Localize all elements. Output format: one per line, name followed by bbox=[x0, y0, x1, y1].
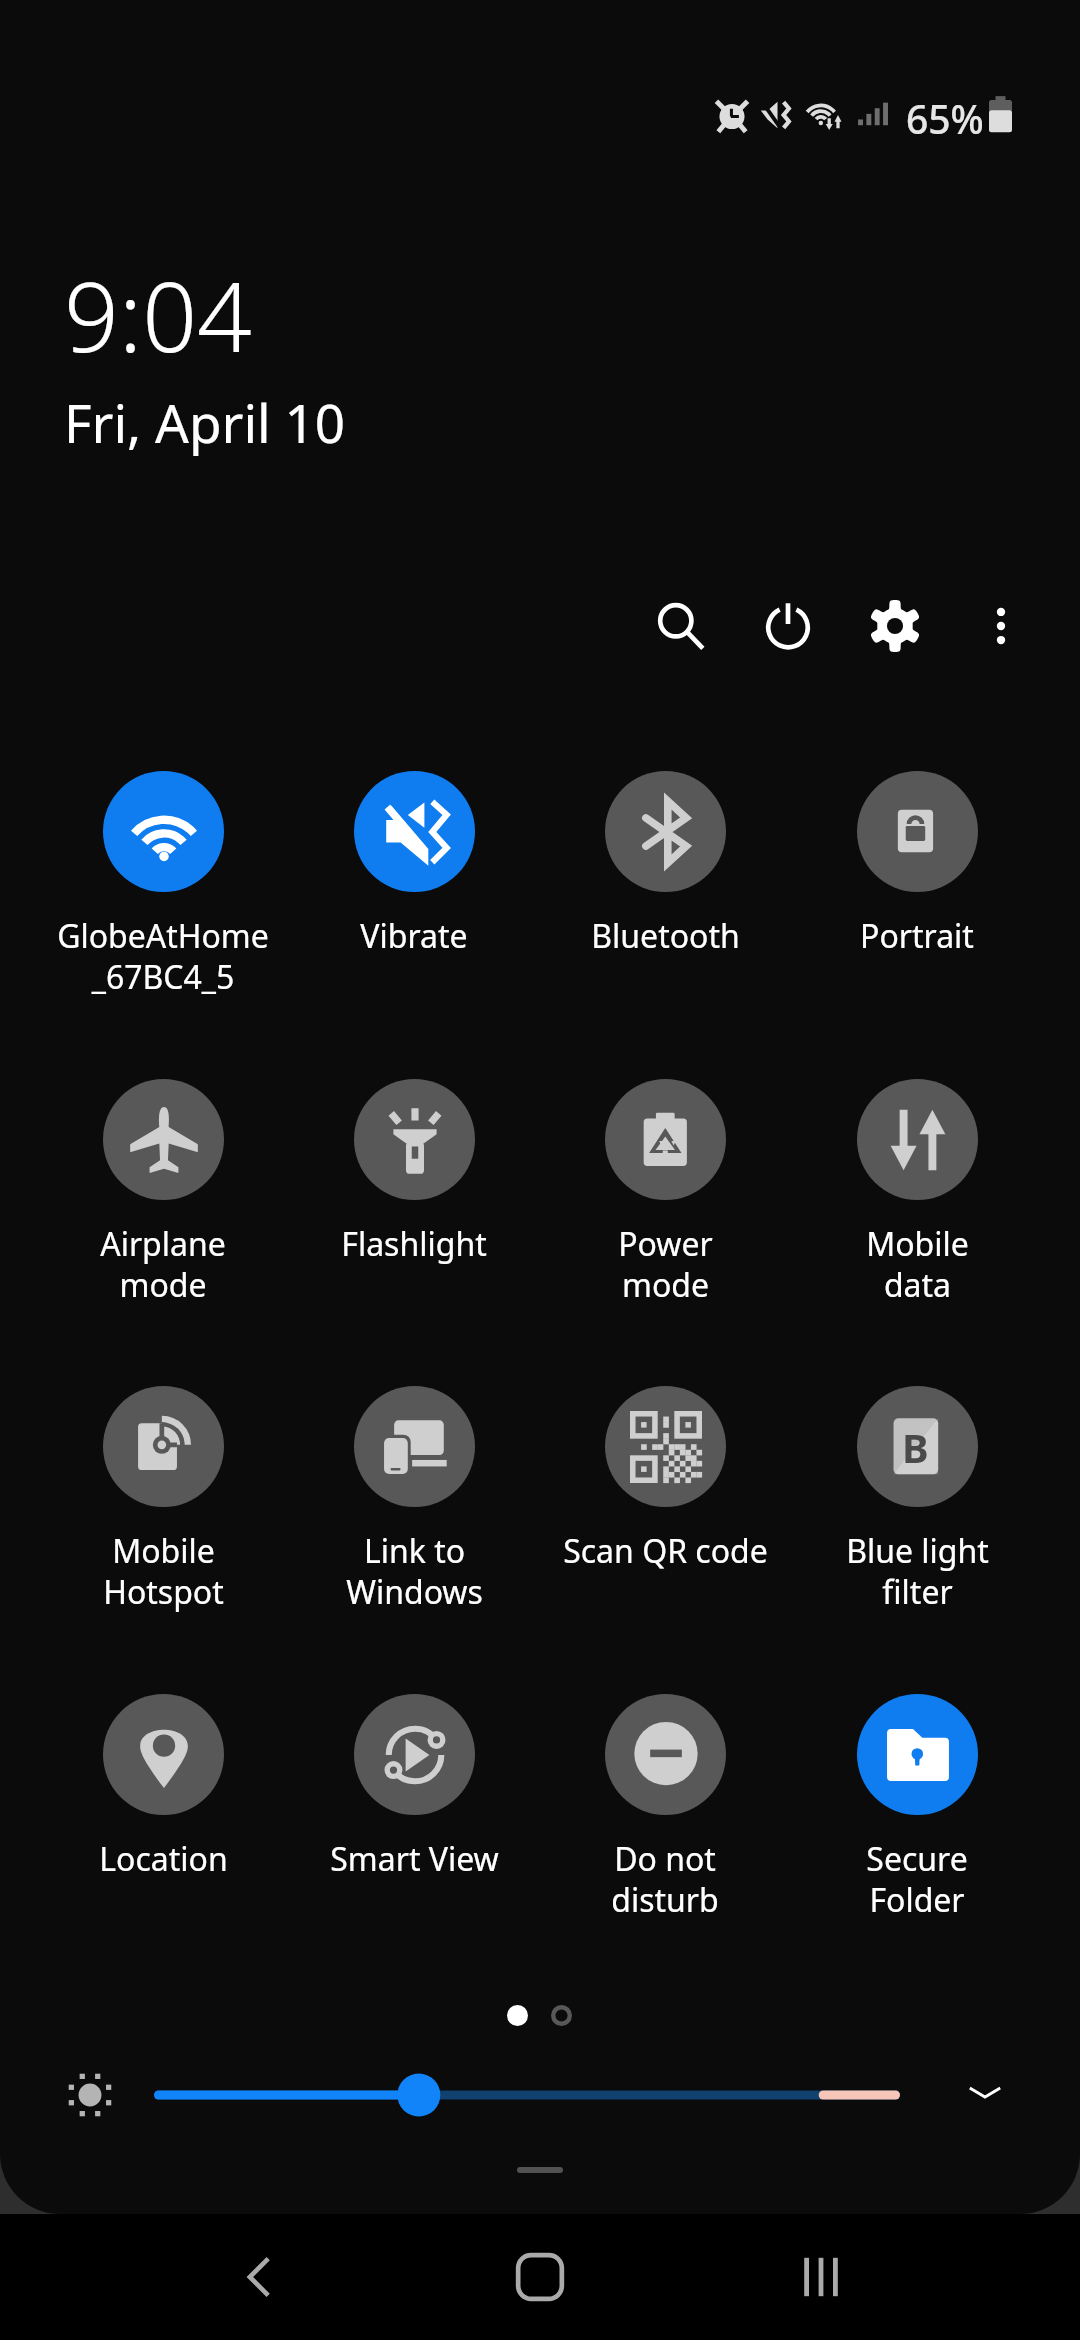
button[interactable]: Airplane mode bbox=[38, 1079, 288, 1307]
staticText: Blue light filter bbox=[846, 1529, 989, 1614]
button[interactable]: Portrait bbox=[792, 771, 1042, 958]
staticText: Mobile Hotspot bbox=[103, 1529, 224, 1614]
button[interactable]: Power bbox=[740, 578, 836, 674]
staticText: Do not disturb bbox=[611, 1837, 719, 1922]
button[interactable]: Scan QR code bbox=[540, 1386, 790, 1573]
button[interactable]: Do not disturb bbox=[540, 1694, 790, 1922]
button[interactable]: Flashlight bbox=[289, 1079, 539, 1266]
button[interactable]: Back bbox=[199, 2217, 319, 2337]
staticText: Scan QR code bbox=[563, 1529, 768, 1573]
staticText: GlobeAtHome _67BC4_5 bbox=[57, 914, 269, 999]
button[interactable]: Location bbox=[38, 1694, 288, 1881]
staticText: Vibrate bbox=[360, 914, 468, 958]
button[interactable]: Vibrate bbox=[289, 771, 539, 958]
button[interactable]: Power mode bbox=[540, 1079, 790, 1307]
staticText: Portrait bbox=[860, 914, 974, 958]
staticText: Power mode bbox=[618, 1222, 713, 1307]
staticText: Flashlight bbox=[341, 1222, 487, 1266]
staticText: B bbox=[902, 1420, 929, 1474]
button[interactable]: Mobile Hotspot bbox=[38, 1386, 288, 1614]
button[interactable]: Secure Folder bbox=[792, 1694, 1042, 1922]
button[interactable]: Mobile data bbox=[792, 1079, 1042, 1307]
button[interactable]: More options bbox=[953, 578, 1049, 674]
staticText: Location bbox=[99, 1837, 228, 1881]
staticText: Smart View bbox=[330, 1837, 499, 1881]
button[interactable]: GlobeAtHome _67BC4_5 bbox=[38, 771, 288, 999]
staticText: Fri, April 10 bbox=[64, 386, 346, 458]
staticText: Link to Windows bbox=[346, 1529, 483, 1614]
staticText: Mobile data bbox=[866, 1222, 969, 1307]
staticText: Bluetooth bbox=[591, 914, 740, 958]
staticText: Airplane mode bbox=[100, 1222, 226, 1307]
button[interactable]: Smart View bbox=[289, 1694, 539, 1881]
button[interactable]: B bbox=[792, 1386, 1042, 1614]
button[interactable]: Bluetooth bbox=[540, 771, 790, 958]
button[interactable]: Home bbox=[480, 2217, 600, 2337]
button[interactable]: Expand bbox=[943, 2050, 1027, 2134]
staticText: 9:04 bbox=[64, 249, 252, 380]
button[interactable]: Settings bbox=[847, 578, 943, 674]
button[interactable]: Recent apps bbox=[761, 2217, 881, 2337]
button[interactable]: Link to Windows bbox=[289, 1386, 539, 1614]
staticText: Secure Folder bbox=[866, 1837, 968, 1922]
button[interactable]: Search bbox=[633, 578, 729, 674]
staticText: 65% bbox=[906, 92, 984, 145]
